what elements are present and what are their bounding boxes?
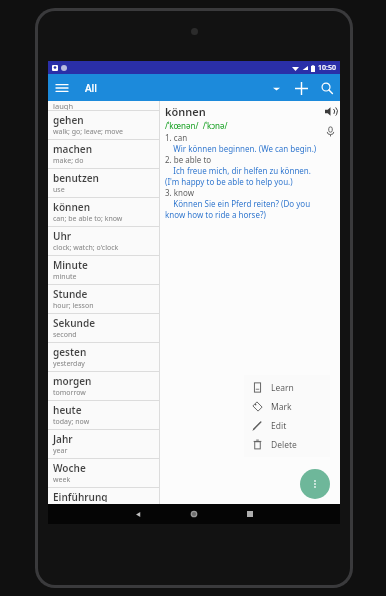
staticText: hour; lesson xyxy=(53,301,94,311)
staticText: Können Sie ein Pferd reiten? (Do you kno… xyxy=(165,198,318,220)
staticText: year xyxy=(53,446,68,456)
button[interactable]: Edit xyxy=(244,416,330,435)
button[interactable]: Delete xyxy=(244,435,330,454)
button[interactable]: Recent apps xyxy=(240,504,260,524)
staticText: Ich freue mich, dir helfen zu können. (I… xyxy=(165,165,318,187)
staticText: können xyxy=(53,200,91,214)
button[interactable]: Uhr xyxy=(48,227,159,255)
staticText: Wir können beginnen. (We can begin.) xyxy=(165,143,317,154)
staticText: today; now xyxy=(53,417,90,427)
staticText: walk; go; leave; move xyxy=(53,127,123,137)
button[interactable]: laugh xyxy=(48,101,159,110)
button[interactable]: Play pronunciation xyxy=(322,103,338,119)
staticText: Sekunde xyxy=(53,316,96,330)
staticText: 10:50 xyxy=(318,63,336,73)
button[interactable]: heute xyxy=(48,401,159,429)
button[interactable]: Stunde xyxy=(48,285,159,313)
staticText: gehen xyxy=(53,113,84,127)
staticText: Delete xyxy=(271,439,297,451)
staticText: machen xyxy=(53,142,93,156)
staticText: All xyxy=(85,81,97,95)
staticText: heute xyxy=(53,403,82,417)
button[interactable]: können xyxy=(48,198,159,226)
staticText: clock; watch; o'clock xyxy=(53,243,119,253)
staticText: Minute xyxy=(53,258,88,272)
staticText: Jahr xyxy=(53,432,73,446)
button[interactable]: Sekunde xyxy=(48,314,159,342)
staticText: can; be able to; know xyxy=(53,214,123,224)
staticText: Woche xyxy=(53,461,86,475)
button[interactable]: gesten xyxy=(48,343,159,371)
button[interactable]: Filter dropdown xyxy=(264,76,288,100)
staticText: Learn xyxy=(271,382,294,394)
staticText: 3. know xyxy=(165,187,194,198)
button[interactable]: gehen xyxy=(48,111,159,139)
button[interactable]: Jahr xyxy=(48,430,159,458)
button[interactable]: Home xyxy=(184,504,204,524)
staticText: 1. can xyxy=(165,132,188,143)
staticText: benutzen xyxy=(53,171,99,185)
staticText: können xyxy=(165,104,206,119)
staticText: /ˈkœnən/ /ˈkɔnə/ xyxy=(165,120,228,131)
button[interactable]: Woche xyxy=(48,459,159,487)
staticText: week xyxy=(53,475,71,485)
button[interactable]: Einführung xyxy=(48,488,159,504)
button[interactable]: Menu xyxy=(48,74,75,101)
staticText: morgen xyxy=(53,374,92,388)
staticText: yesterday xyxy=(53,359,85,369)
button[interactable]: Back xyxy=(128,504,148,524)
button[interactable]: Search xyxy=(314,75,340,101)
staticText: Uhr xyxy=(53,229,72,243)
staticText: tomorrow xyxy=(53,388,86,398)
button[interactable]: morgen xyxy=(48,372,159,400)
staticText: Stunde xyxy=(53,287,88,301)
button[interactable]: Voice input xyxy=(322,123,338,139)
staticText: Mark xyxy=(271,401,292,413)
staticText: gesten xyxy=(53,345,87,359)
staticText: use xyxy=(53,185,65,195)
button[interactable]: Minute xyxy=(48,256,159,284)
button[interactable]: More options xyxy=(300,469,330,499)
button[interactable]: Mark xyxy=(244,397,330,416)
button[interactable]: machen xyxy=(48,140,159,168)
staticText: minute xyxy=(53,272,77,282)
staticText: make; do xyxy=(53,156,84,166)
button[interactable]: Add xyxy=(288,75,314,101)
staticText: Edit xyxy=(271,420,287,432)
button[interactable]: Learn xyxy=(244,378,330,397)
staticText: second xyxy=(53,330,77,340)
staticText: Einführung xyxy=(53,490,108,502)
staticText: 2. be able to xyxy=(165,154,212,165)
button[interactable]: benutzen xyxy=(48,169,159,197)
staticText: laugh xyxy=(53,101,74,110)
